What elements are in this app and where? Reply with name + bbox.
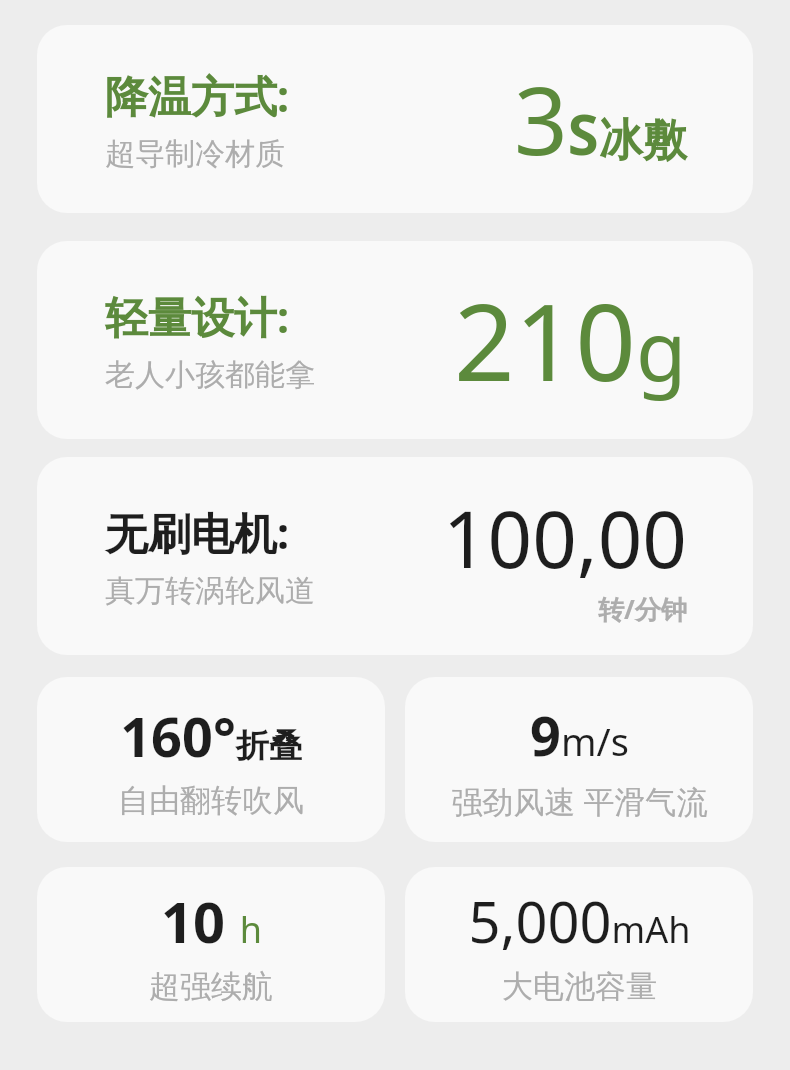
- staticText: 210g: [454, 268, 687, 412]
- button[interactable]: 10 h: [37, 867, 385, 1022]
- button[interactable]: 轻量设计:: [37, 241, 753, 439]
- staticText: 轻量设计:: [105, 287, 290, 346]
- staticText: 100,00: [443, 485, 687, 591]
- button[interactable]: 9m/s: [405, 677, 753, 842]
- staticText: 自由翻转吹风: [118, 781, 304, 820]
- staticText: 超导制冷材质: [105, 135, 285, 173]
- staticText: 3S冰敷: [514, 55, 687, 183]
- button[interactable]: 5,000mAh: [405, 867, 753, 1022]
- button[interactable]: 降温方式:: [37, 25, 753, 213]
- staticText: 10 h: [161, 883, 262, 959]
- staticText: 无刷电机:: [105, 503, 290, 562]
- staticText: 超强续航: [149, 967, 273, 1006]
- staticText: 老人小孩都能拿: [105, 356, 315, 394]
- button[interactable]: 160°折叠: [37, 677, 385, 842]
- staticText: 转/分钟: [598, 591, 687, 627]
- staticText: 大电池容量: [502, 967, 657, 1006]
- staticText: 5,000mAh: [468, 883, 691, 959]
- staticText: 强劲风速 平滑气流: [451, 780, 708, 822]
- staticText: 真万转涡轮风道: [105, 572, 315, 610]
- staticText: 160°折叠: [120, 699, 302, 773]
- button[interactable]: 无刷电机:: [37, 457, 753, 655]
- staticText: 9m/s: [530, 698, 629, 772]
- staticText: 降温方式:: [105, 66, 290, 125]
